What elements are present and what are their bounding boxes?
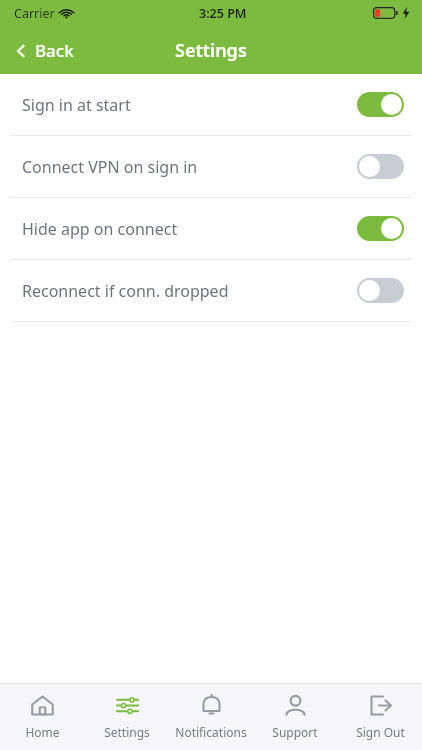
staticText: 3:25 PM: [199, 5, 247, 22]
button[interactable]: Off: [357, 278, 404, 303]
staticText: Reconnect if conn. dropped: [22, 280, 229, 302]
button[interactable]: Off: [357, 154, 404, 179]
staticText: Carrier: [14, 5, 55, 22]
button[interactable]: Reconnect if conn. dropped: [0, 260, 422, 321]
button[interactable]: Back: [0, 33, 88, 68]
button[interactable]: On: [357, 216, 404, 241]
staticText: Sign Out: [356, 724, 405, 740]
button[interactable]: Home: [0, 687, 84, 746]
staticText: Notifications: [175, 724, 247, 740]
button[interactable]: On: [357, 92, 404, 117]
staticText: Sign in at start: [22, 94, 131, 116]
staticText: Connect VPN on sign in: [22, 156, 198, 178]
button[interactable]: Hide app on connect: [0, 198, 422, 259]
button[interactable]: Sign in at start: [0, 74, 422, 135]
staticText: Hide app on connect: [22, 218, 178, 240]
staticText: Support: [272, 724, 318, 740]
staticText: Settings: [175, 38, 247, 63]
button[interactable]: Sign Out: [338, 687, 422, 746]
staticText: Home: [25, 724, 60, 740]
button[interactable]: Support: [253, 687, 337, 746]
button[interactable]: Connect VPN on sign in: [0, 136, 422, 197]
button[interactable]: Notifications: [169, 687, 253, 746]
button[interactable]: Settings: [85, 687, 169, 746]
staticText: Back: [35, 39, 74, 62]
staticText: Settings: [104, 724, 150, 740]
